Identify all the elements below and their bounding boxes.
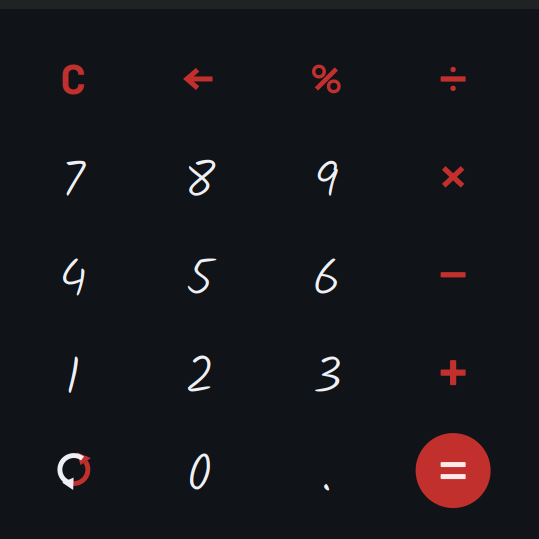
button[interactable]: 7 (9, 128, 136, 226)
button[interactable]: 2 (136, 324, 263, 422)
button[interactable]: 9 (263, 128, 390, 226)
button[interactable]: Subtract (390, 226, 517, 324)
staticText: 2 (185, 337, 215, 420)
button[interactable]: 4 (9, 226, 136, 324)
button[interactable]: 5 (136, 226, 263, 324)
staticText: 8 (184, 141, 216, 224)
button[interactable]: 6 (263, 226, 390, 324)
button[interactable]: Clear (9, 30, 136, 128)
button[interactable]: Add (390, 324, 517, 422)
button[interactable]: Toggle sign (9, 422, 136, 519)
staticText: C (60, 53, 85, 103)
button[interactable]: 0 (136, 422, 263, 519)
button[interactable]: . (263, 422, 390, 519)
staticText: 0 (187, 435, 213, 518)
staticText: 3 (311, 337, 341, 420)
button[interactable]: Percent (263, 30, 390, 128)
staticText: 9 (314, 141, 339, 224)
staticText: 5 (185, 239, 214, 322)
staticText: 1 (64, 337, 81, 420)
staticText: 6 (312, 239, 341, 322)
button[interactable]: Multiply (390, 128, 517, 226)
staticText: . (320, 435, 332, 518)
button[interactable]: Equals (390, 422, 517, 519)
button[interactable]: 1 (9, 324, 136, 422)
button[interactable]: 3 (263, 324, 390, 422)
staticText: 7 (61, 141, 85, 224)
button[interactable]: Backspace (136, 30, 263, 128)
staticText: 4 (58, 239, 87, 322)
button[interactable]: 8 (136, 128, 263, 226)
button[interactable]: Divide (390, 30, 517, 128)
